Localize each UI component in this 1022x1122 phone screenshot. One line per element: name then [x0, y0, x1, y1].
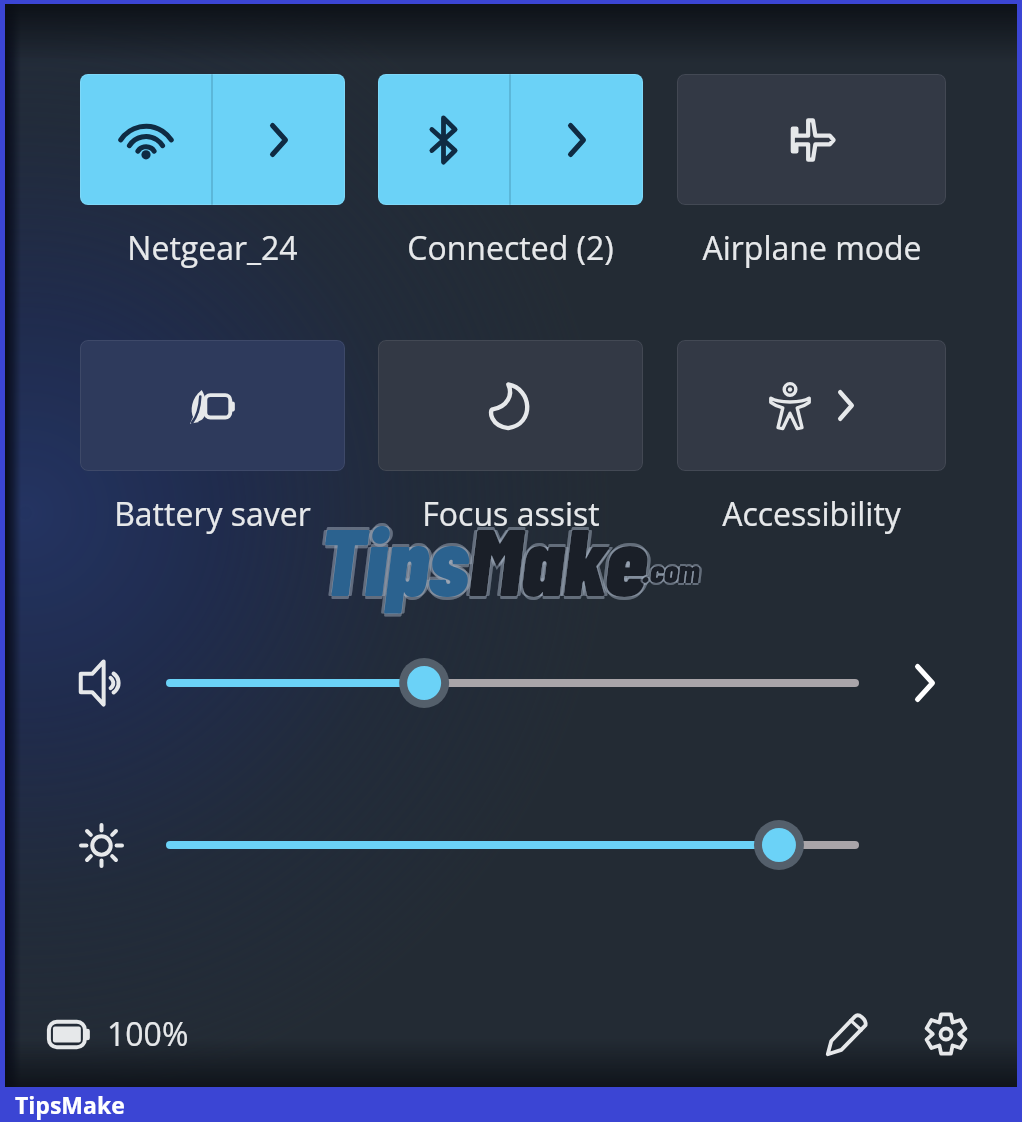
- staticText: Make: [469, 498, 647, 612]
- staticText: .com: [644, 551, 702, 589]
- button[interactable]: Connected (2): [378, 74, 643, 205]
- staticText: Tips: [322, 501, 472, 615]
- staticText: Make: [469, 501, 647, 615]
- staticText: Tips: [319, 501, 469, 615]
- staticText: .com: [642, 549, 700, 587]
- button[interactable]: Netgear_24: [80, 74, 345, 205]
- staticText: Connected (2): [407, 226, 614, 270]
- staticText: .com: [642, 551, 700, 589]
- staticText: Netgear_24: [127, 226, 298, 270]
- button[interactable]: Accessibility: [677, 340, 946, 471]
- staticText: Make: [472, 501, 650, 615]
- staticText: TipsMake: [15, 1089, 125, 1120]
- button[interactable]: Toggle: [71, 815, 131, 875]
- staticText: Accessibility: [722, 492, 901, 536]
- staticText: .com: [642, 553, 700, 591]
- button[interactable]: Edit quick settings: [809, 995, 887, 1073]
- staticText: Tips: [319, 504, 469, 618]
- staticText: Tips: [316, 501, 466, 615]
- staticText: Make: [466, 501, 644, 615]
- staticText: Airplane mode: [702, 226, 922, 270]
- button[interactable]: Settings: [907, 995, 985, 1073]
- button[interactable]: Slider: [165, 815, 865, 875]
- button[interactable]: Toggle: [71, 653, 131, 713]
- staticText: 100%: [107, 1012, 189, 1056]
- staticText: Focus assist: [422, 492, 600, 536]
- button[interactable]: Focus assist: [378, 340, 643, 471]
- button[interactable]: Slider: [165, 653, 865, 713]
- staticText: Tips: [319, 498, 469, 612]
- button[interactable]: Airplane mode: [677, 74, 946, 205]
- button[interactable]: Battery saver: [80, 340, 345, 471]
- button[interactable]: 100%: [42, 1004, 195, 1064]
- staticText: Battery saver: [114, 492, 311, 536]
- staticText: Make: [469, 504, 647, 618]
- staticText: .com: [640, 551, 698, 589]
- button[interactable]: Open sound settings: [895, 653, 955, 713]
